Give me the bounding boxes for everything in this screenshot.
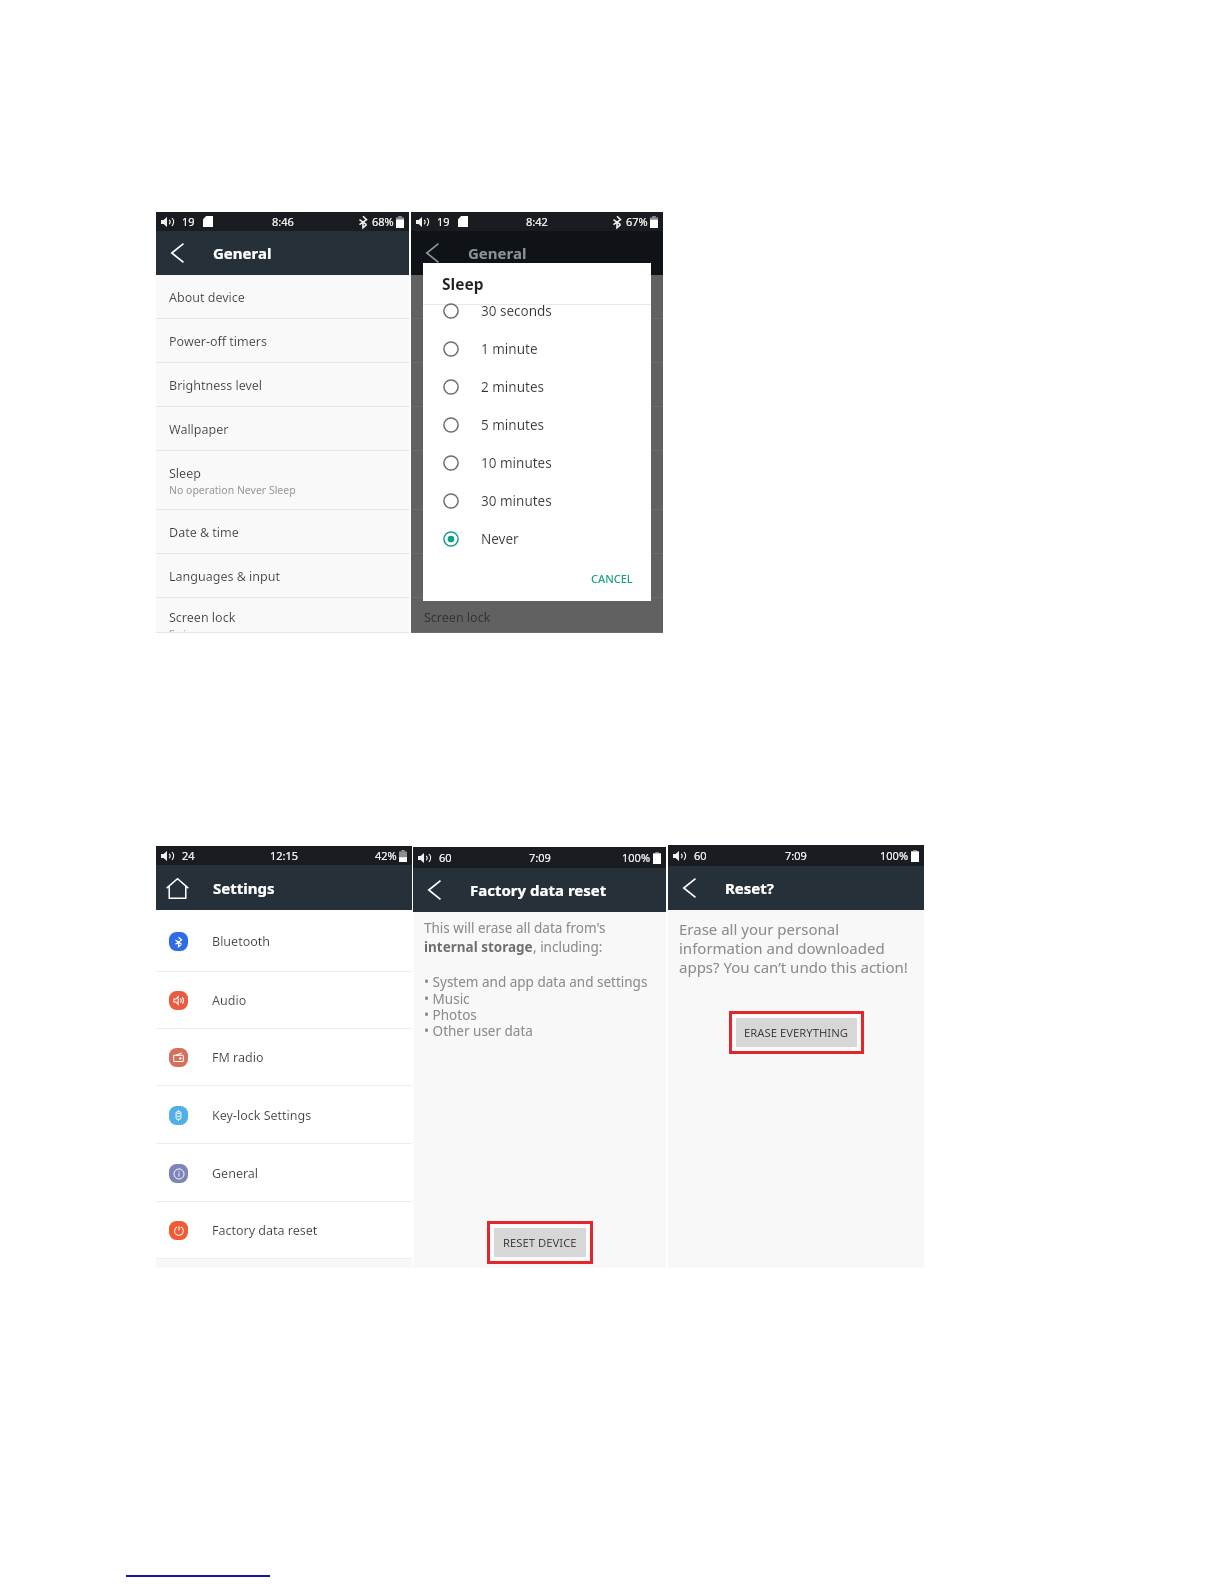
button[interactable]: Back <box>413 868 666 912</box>
staticText: About device <box>169 289 245 306</box>
staticText: Never <box>481 530 519 548</box>
staticText: 5 minutes <box>481 416 544 434</box>
button[interactable]: RESET DEVICE <box>494 1228 586 1257</box>
staticText: Wallpaper <box>424 421 484 438</box>
staticText: Factory data reset <box>212 1222 318 1239</box>
staticText: Erase all your personal information and … <box>679 919 908 977</box>
staticText: Audio <box>212 992 247 1009</box>
staticText: • System and app data and settings • Mus… <box>424 973 648 1040</box>
staticText: Reset? <box>725 878 774 898</box>
button[interactable]: Home <box>163 874 191 902</box>
button[interactable]: Never <box>423 520 651 558</box>
staticText: 19 <box>437 214 450 229</box>
button[interactable]: 2 minutes <box>423 368 651 406</box>
button[interactable]: Home <box>156 865 412 910</box>
staticText: General <box>213 243 272 263</box>
staticText: 1 minute <box>481 340 538 358</box>
button[interactable]: Factory data reset <box>156 1202 412 1259</box>
button[interactable]: Back <box>156 231 409 275</box>
button[interactable]: General <box>156 1144 412 1202</box>
staticText: Languages & input <box>169 568 280 585</box>
staticText: 100% <box>880 848 909 863</box>
staticText: Screen lock <box>169 609 236 626</box>
button[interactable]: Back <box>411 231 663 275</box>
staticText: 12:15 <box>270 848 299 863</box>
staticText: internal storage <box>424 938 533 956</box>
staticText: 68% <box>372 214 394 229</box>
staticText: 19 <box>182 214 195 229</box>
staticText: 10 minutes <box>481 454 552 472</box>
staticText: General <box>468 243 527 263</box>
button[interactable]: Bluetooth <box>156 910 412 972</box>
button[interactable]: Languages & input <box>156 554 409 598</box>
staticText: Date & time <box>169 524 239 541</box>
button[interactable]: Back <box>163 239 191 267</box>
staticText: Sleep <box>169 465 201 482</box>
staticText: 7:09 <box>785 848 807 863</box>
staticText: Power-off timers <box>424 333 522 350</box>
button[interactable]: 10 minutes <box>423 444 651 482</box>
staticText: 60 <box>439 850 452 865</box>
button[interactable]: 1 minute <box>423 330 651 368</box>
button[interactable]: Back <box>675 874 703 902</box>
button[interactable]: Key-lock Settings <box>156 1086 412 1144</box>
staticText: This will erase all data from's <box>424 919 606 937</box>
staticText: RESET DEVICE <box>503 1235 577 1250</box>
staticText: No operation Never Sleep <box>424 483 551 497</box>
staticText: FM radio <box>212 1049 264 1066</box>
staticText: Swipe <box>424 627 454 633</box>
button[interactable]: Power-off timers <box>156 319 409 363</box>
button[interactable]: ERASE EVERYTHING <box>736 1018 857 1047</box>
staticText: Sleep <box>442 273 484 294</box>
button[interactable]: Audio <box>156 972 412 1029</box>
staticText: 30 seconds <box>481 302 552 320</box>
staticText: No operation Never Sleep <box>169 483 296 497</box>
staticText: General <box>212 1165 259 1182</box>
staticText: Key-lock Settings <box>212 1107 312 1124</box>
staticText: Screen lock <box>424 609 491 626</box>
staticText: 60 <box>694 848 707 863</box>
staticText: Brightness level <box>169 377 263 394</box>
button[interactable]: 5 minutes <box>423 406 651 444</box>
staticText: About device <box>424 289 500 306</box>
staticText: Power-off timers <box>169 333 267 350</box>
button[interactable]: Wallpaper <box>156 407 409 451</box>
staticText: 100% <box>622 850 651 865</box>
staticText: , including: <box>533 938 603 956</box>
button[interactable]: Brightness level <box>156 363 409 407</box>
staticText: Swipe <box>169 627 199 633</box>
staticText: 8:42 <box>526 214 548 229</box>
staticText: Sleep <box>424 465 456 482</box>
staticText: 30 minutes <box>481 492 552 510</box>
button[interactable]: 30 minutes <box>423 482 651 520</box>
staticText: 2 minutes <box>481 378 544 396</box>
button[interactable]: Back <box>420 876 448 904</box>
staticText: 7:09 <box>529 850 551 865</box>
button[interactable]: Date & time <box>156 510 409 554</box>
staticText: Factory data reset <box>470 880 607 900</box>
button[interactable]: 30 seconds <box>423 292 651 330</box>
button[interactable]: Back <box>418 239 446 267</box>
button[interactable]: FM radio <box>156 1029 412 1086</box>
staticText: Date & time <box>424 524 494 541</box>
staticText: CANCEL <box>591 571 633 586</box>
staticText: Wallpaper <box>169 421 229 438</box>
staticText: Settings <box>213 878 275 898</box>
staticText: 8:46 <box>272 214 294 229</box>
button[interactable]: Sleep <box>156 451 409 510</box>
button[interactable]: About device <box>156 275 409 319</box>
button[interactable]: Back <box>668 866 924 910</box>
staticText: 24 <box>182 848 195 863</box>
staticText: 42% <box>375 848 397 863</box>
button[interactable]: Screen lock <box>156 598 409 633</box>
button[interactable]: CANCEL <box>591 571 633 586</box>
staticText: ERASE EVERYTHING <box>744 1025 849 1040</box>
staticText: Bluetooth <box>212 933 271 950</box>
staticText: 67% <box>626 214 648 229</box>
staticText: Brightness level <box>424 377 518 394</box>
